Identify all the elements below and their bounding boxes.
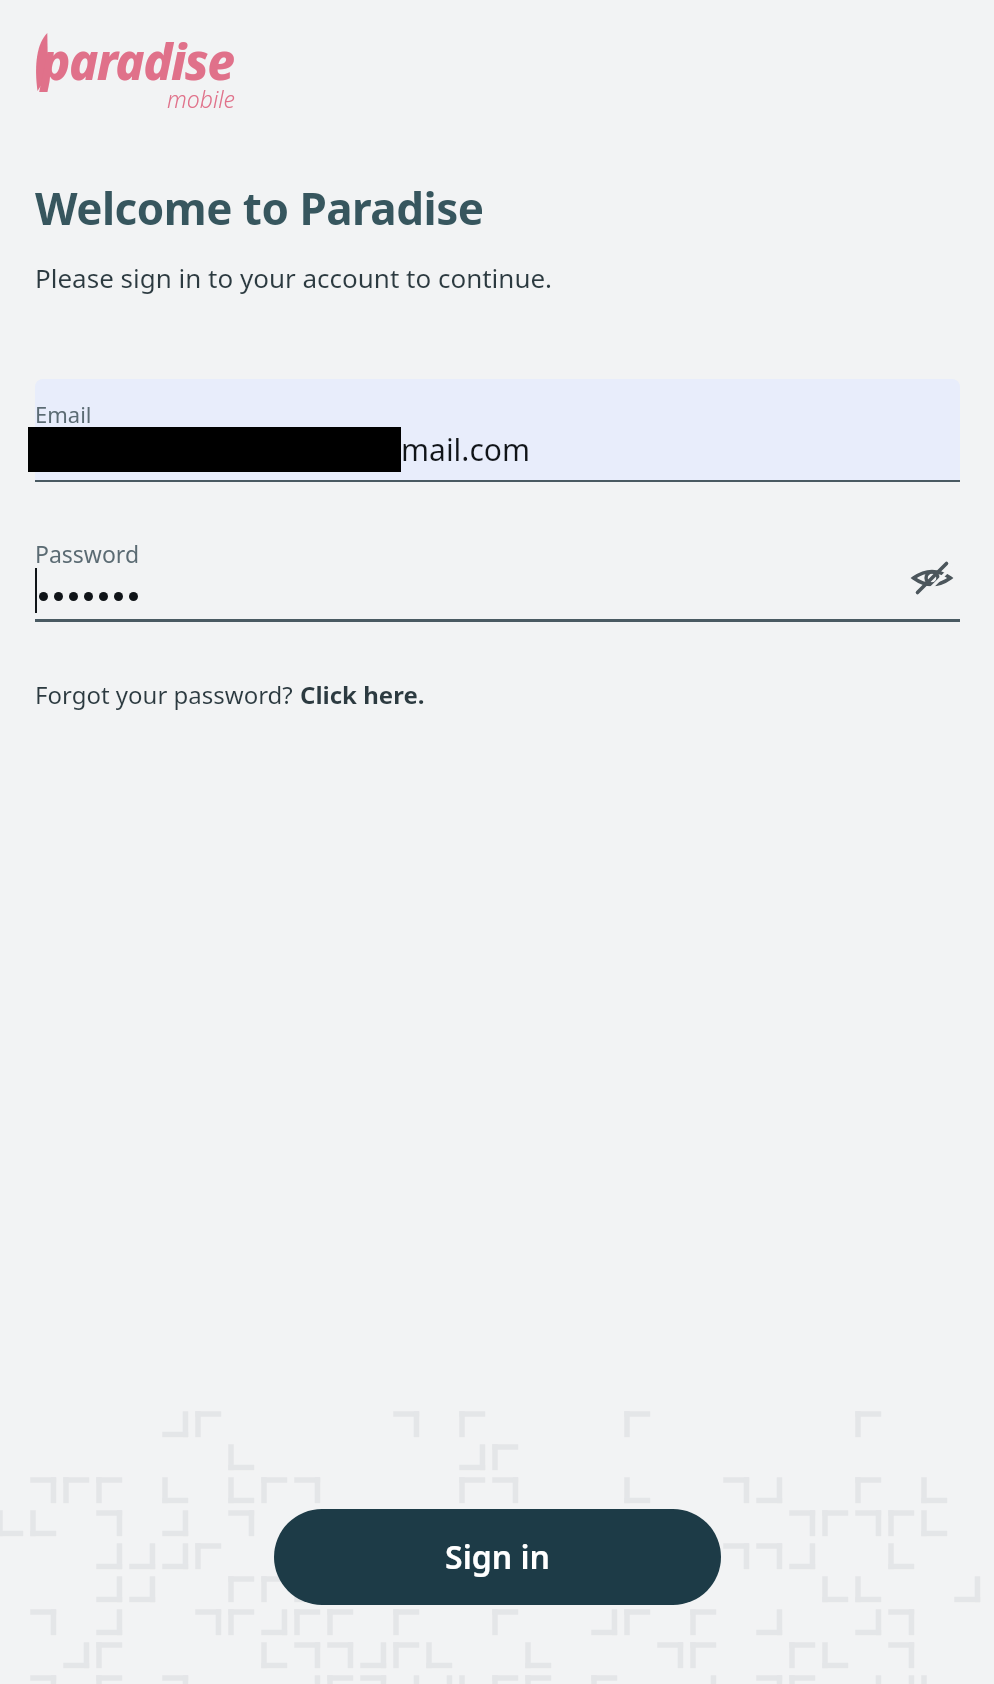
button[interactable]: Show password xyxy=(904,550,960,606)
staticText: paradise xyxy=(41,28,234,95)
button[interactable]: Forgot your password? xyxy=(35,678,425,711)
staticText: Click here. xyxy=(300,678,425,711)
staticText: Forgot your password? xyxy=(35,678,300,711)
staticText: Sign in xyxy=(445,1535,550,1579)
staticText: Welcome to Paradise xyxy=(35,178,484,238)
staticText: Please sign in to your account to contin… xyxy=(35,260,553,295)
button[interactable]: Email xyxy=(35,379,960,482)
staticText: Email xyxy=(35,399,92,429)
staticText: mobile xyxy=(167,83,235,114)
staticText: mail.com xyxy=(401,429,530,470)
button[interactable]: Password xyxy=(35,528,960,622)
staticText: Password xyxy=(35,538,140,569)
button[interactable]: Sign in xyxy=(274,1509,721,1605)
